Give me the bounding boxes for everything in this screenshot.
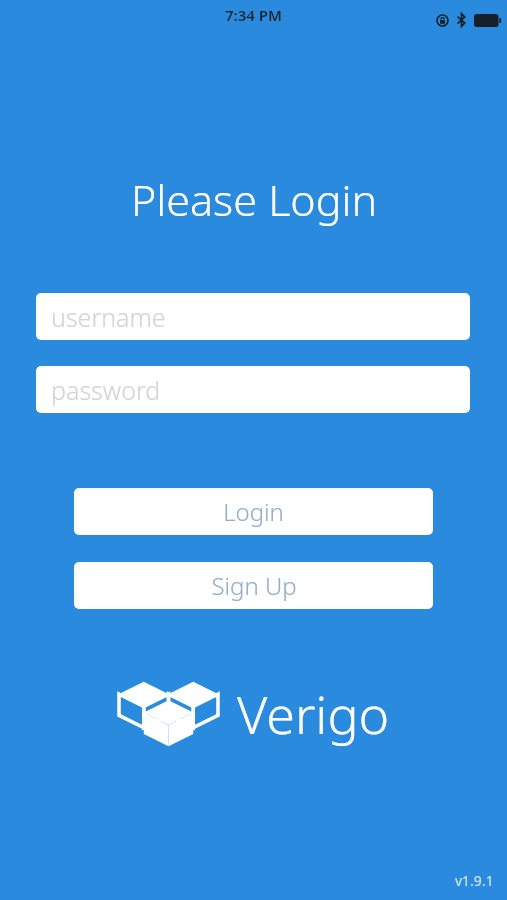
- staticText: password: [51, 373, 161, 407]
- button[interactable]: Sign Up: [74, 562, 433, 609]
- staticText: Verigo: [237, 678, 390, 749]
- other: Verigo logo: [118, 679, 219, 749]
- staticText: Sign Up: [211, 569, 297, 602]
- button[interactable]: Login: [74, 488, 433, 535]
- staticText: 7:34 PM: [225, 5, 282, 25]
- staticText: v1.9.1: [455, 871, 494, 890]
- button[interactable]: username: [36, 293, 470, 340]
- button[interactable]: password: [36, 366, 470, 413]
- staticText: Please Login: [131, 170, 377, 229]
- staticText: username: [51, 300, 166, 334]
- staticText: Login: [223, 495, 284, 528]
